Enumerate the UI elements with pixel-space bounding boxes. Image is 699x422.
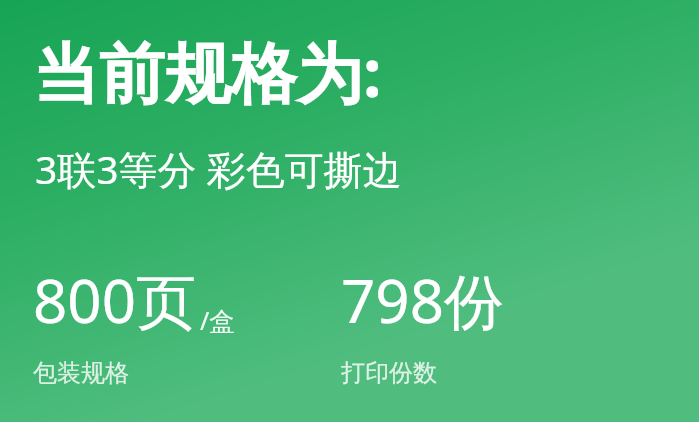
staticText: 当前规格为: bbox=[33, 26, 382, 116]
staticText: 打印份数 bbox=[341, 358, 437, 388]
button[interactable]: 3联3等分 彩色可撕边 bbox=[35, 142, 402, 195]
staticText: 800页 bbox=[33, 259, 196, 341]
button[interactable]: 当前规格为: bbox=[33, 26, 382, 116]
staticText: 包装规格 bbox=[33, 358, 129, 388]
button[interactable]: 798份 bbox=[341, 259, 504, 388]
button[interactable]: 800页 bbox=[33, 259, 235, 388]
staticText: 798份 bbox=[341, 259, 504, 341]
staticText: 3联3等分 彩色可撕边 bbox=[35, 142, 402, 195]
staticText: /盒 bbox=[200, 303, 235, 337]
